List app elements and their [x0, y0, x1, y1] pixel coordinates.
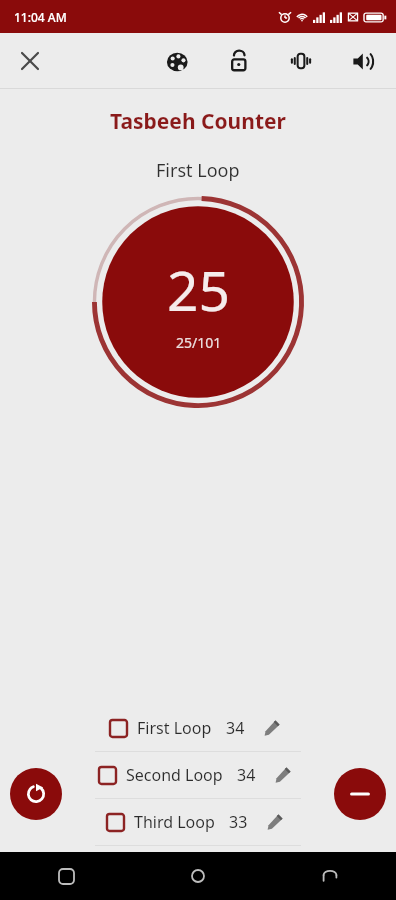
staticText: 25	[167, 252, 230, 327]
button[interactable]: Recents	[48, 858, 84, 894]
staticText: 34	[237, 764, 256, 786]
staticText: First Loop	[156, 158, 240, 183]
staticText: First Loop	[137, 717, 212, 739]
button[interactable]: Theme	[154, 38, 200, 84]
button[interactable]: Lock screen	[216, 38, 262, 84]
button[interactable]: Edit Third Loop	[260, 807, 290, 837]
staticText: 33	[229, 811, 248, 833]
button[interactable]: Edit First Loop	[257, 713, 287, 743]
button[interactable]: Reset counter	[10, 768, 62, 820]
button[interactable]: Close	[8, 39, 52, 83]
staticText: Tasbeeh Counter	[110, 107, 286, 136]
button[interactable]: Decrease count	[334, 768, 386, 820]
staticText: 11:04 AM	[14, 9, 67, 25]
staticText: 25/101	[176, 333, 222, 352]
staticText: 34	[226, 717, 245, 739]
staticText: Second Loop	[126, 764, 223, 786]
button[interactable]: Select First Loop	[110, 705, 287, 751]
staticText: Third Loop	[134, 811, 215, 833]
button[interactable]: Back	[312, 858, 348, 894]
button[interactable]: Edit Second Loop	[268, 760, 298, 790]
button[interactable]: Select Second Loop	[99, 752, 298, 798]
button[interactable]: Select Third Loop	[107, 814, 124, 831]
button[interactable]: Sound	[340, 38, 386, 84]
button[interactable]: Home	[180, 858, 216, 894]
button[interactable]: Select First Loop	[110, 720, 127, 737]
button[interactable]: Select Second Loop	[99, 767, 116, 784]
button[interactable]: Vibration	[278, 38, 324, 84]
button[interactable]: Select Third Loop	[107, 799, 290, 845]
